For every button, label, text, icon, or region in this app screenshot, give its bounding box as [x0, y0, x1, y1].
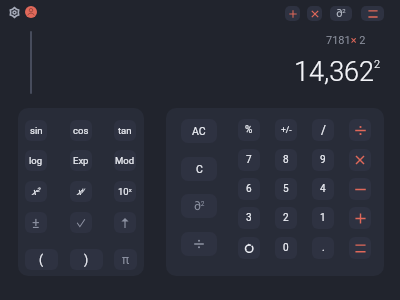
staticText: .	[322, 242, 325, 254]
button[interactable]: Minus	[349, 178, 371, 200]
button[interactable]: Power	[114, 212, 136, 233]
button[interactable]: Mod	[114, 150, 136, 171]
button[interactable]: AC	[181, 119, 217, 143]
staticText: 1	[320, 212, 326, 224]
staticText: π	[122, 253, 130, 267]
staticText: tan	[118, 125, 132, 136]
staticText: x2	[32, 186, 40, 197]
staticText: %	[245, 124, 253, 136]
button[interactable]: )	[70, 249, 103, 270]
button[interactable]: Settings	[9, 7, 20, 18]
button[interactable]: 6	[238, 178, 260, 200]
button[interactable]: 3	[238, 207, 260, 229]
staticText: Mod	[115, 155, 135, 166]
staticText: ∂2	[336, 7, 346, 20]
button[interactable]: 5	[275, 178, 297, 200]
staticText: Exp	[73, 155, 89, 166]
staticText: xy	[77, 186, 85, 197]
button[interactable]: sin	[25, 120, 47, 141]
staticText: log	[29, 155, 43, 166]
button[interactable]: 8	[275, 149, 297, 171]
button[interactable]: 2	[275, 207, 297, 229]
staticText: (	[39, 253, 44, 267]
button[interactable]: Pi	[114, 249, 137, 270]
button[interactable]: +/-	[275, 119, 297, 141]
staticText: sin	[30, 125, 43, 136]
staticText: 2	[283, 212, 289, 224]
button[interactable]: x2	[25, 181, 47, 202]
staticText: 5	[283, 183, 289, 195]
staticText: ∂2	[194, 199, 205, 213]
button[interactable]: xy	[70, 181, 92, 202]
button[interactable]: 1	[312, 207, 334, 229]
staticText: cos	[73, 125, 89, 136]
button[interactable]: 10x	[114, 181, 136, 202]
button[interactable]: tan	[114, 120, 136, 141]
button[interactable]: Equals	[361, 6, 384, 21]
button[interactable]: log	[25, 150, 47, 171]
button[interactable]: cos	[70, 120, 92, 141]
button[interactable]: .	[312, 237, 334, 259]
staticText: +/-	[281, 125, 292, 135]
button[interactable]: Multiply	[307, 6, 322, 21]
staticText: 8	[283, 154, 289, 166]
staticText: 3	[246, 212, 252, 224]
button[interactable]: Multiply	[349, 149, 371, 171]
button[interactable]: Exp	[70, 150, 92, 171]
button[interactable]: Plus	[349, 207, 371, 229]
button[interactable]: 9	[312, 149, 334, 171]
staticText: C	[196, 163, 203, 175]
button[interactable]: Partial derivative	[330, 6, 352, 21]
staticText: ±	[32, 215, 40, 231]
button[interactable]: /	[312, 119, 334, 141]
staticText: 7	[246, 154, 252, 166]
button[interactable]: Plus minus	[25, 212, 47, 233]
staticText: 6	[246, 183, 252, 195]
staticText: 7181× 2	[326, 34, 366, 47]
button[interactable]: Add	[285, 6, 300, 21]
button[interactable]: (	[25, 249, 58, 270]
button[interactable]: 0	[275, 237, 297, 259]
staticText: )	[84, 253, 89, 267]
staticText: 14,3622	[294, 56, 381, 88]
button[interactable]: Divide	[349, 119, 371, 141]
button[interactable]: 7	[238, 149, 260, 171]
button[interactable]: Divide	[181, 232, 217, 256]
staticText: /	[321, 123, 326, 137]
staticText: AC	[192, 125, 206, 137]
button[interactable]: Undo	[238, 237, 260, 259]
staticText: 9	[320, 154, 326, 166]
button[interactable]: Account	[25, 6, 37, 18]
button[interactable]: Partial derivative	[181, 194, 217, 218]
button[interactable]: C	[181, 157, 217, 181]
staticText: 0	[283, 242, 289, 254]
button[interactable]: 4	[312, 178, 334, 200]
button[interactable]: Square root	[70, 212, 92, 233]
staticText: 4	[320, 183, 326, 195]
staticText: 10x	[118, 186, 132, 197]
button[interactable]: %	[238, 119, 260, 141]
button[interactable]: Equals	[349, 237, 371, 259]
